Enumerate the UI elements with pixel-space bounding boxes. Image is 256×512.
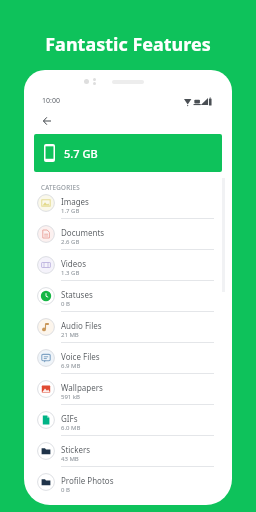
staticText: Documents	[61, 227, 105, 238]
staticText: 10:00	[42, 96, 60, 106]
staticText: 5.7 GB	[64, 146, 98, 161]
staticText: 2.6 GB	[61, 238, 80, 246]
staticText: Images	[61, 196, 89, 207]
button[interactable]: 5.7 GB	[34, 134, 222, 172]
staticText: Fantastic Features	[0, 32, 256, 57]
staticText: Voice Files	[61, 351, 100, 362]
button[interactable]: Stickers	[24, 436, 232, 466]
staticText: 0 B	[61, 300, 70, 308]
button[interactable]: Videos	[24, 250, 232, 280]
button[interactable]: Voice Files	[24, 343, 232, 373]
staticText: 6.0 MB	[61, 424, 81, 432]
button[interactable]: Documents	[24, 219, 232, 249]
staticText: Wallpapers	[61, 382, 103, 393]
staticText: Audio Files	[61, 320, 102, 331]
button[interactable]: GIFs	[24, 405, 232, 435]
staticText: GIFs	[61, 413, 78, 424]
button[interactable]: Profile Photos	[24, 467, 232, 497]
button[interactable]: Images	[24, 188, 232, 218]
staticText: 591 kB	[61, 393, 80, 401]
staticText: Stickers	[61, 444, 91, 455]
staticText: 0 B	[61, 486, 70, 494]
button[interactable]: Audio Files	[24, 312, 232, 342]
staticText: 43 MB	[61, 455, 79, 463]
staticText: Statuses	[61, 289, 93, 300]
staticText: CATEGORIES	[41, 183, 80, 191]
staticText: 1.3 GB	[61, 269, 80, 277]
staticText: Videos	[61, 258, 86, 269]
staticText: 1.7 GB	[61, 207, 80, 215]
button[interactable]: Back	[35, 109, 59, 133]
staticText: 21 MB	[61, 331, 79, 339]
staticText: 6.9 MB	[61, 362, 81, 370]
button[interactable]: Wallpapers	[24, 374, 232, 404]
staticText: Profile Photos	[61, 475, 114, 486]
button[interactable]: Statuses	[24, 281, 232, 311]
